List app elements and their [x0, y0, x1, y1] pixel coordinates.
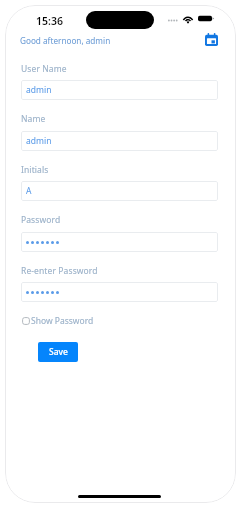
- button[interactable]: [21, 232, 218, 252]
- staticText: admin: [26, 84, 52, 96]
- button[interactable]: Calendar: [203, 31, 220, 48]
- staticText: Name: [21, 113, 46, 125]
- button[interactable]: Good afternoon, admin: [20, 35, 111, 46]
- button[interactable]: admin: [21, 131, 218, 151]
- staticText: Save: [49, 346, 68, 358]
- staticText: Password: [21, 214, 61, 226]
- staticText: Initials: [21, 164, 49, 176]
- button[interactable]: Show Password: [22, 315, 94, 327]
- staticText: Re-enter Password: [21, 265, 98, 277]
- staticText: Good afternoon, admin: [20, 35, 111, 46]
- staticText: User Name: [21, 63, 67, 75]
- staticText: 15:36: [36, 14, 63, 28]
- button[interactable]: admin: [21, 80, 218, 100]
- staticText: A: [26, 185, 32, 197]
- button[interactable]: [21, 282, 218, 302]
- staticText: Show Password: [31, 315, 94, 327]
- button[interactable]: A: [21, 181, 218, 201]
- button[interactable]: Save: [38, 342, 78, 362]
- staticText: admin: [26, 135, 52, 147]
